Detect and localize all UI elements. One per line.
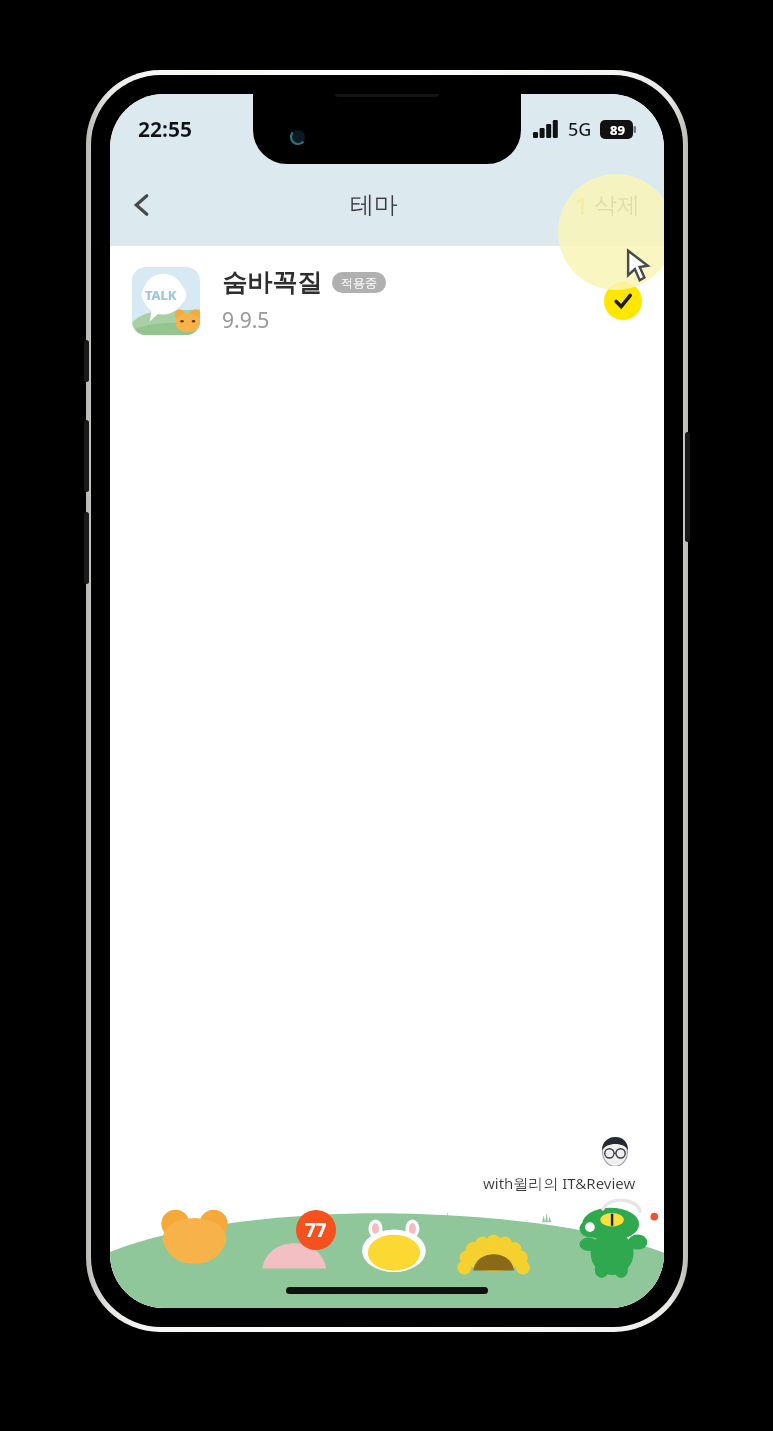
staticText: 적용중 (341, 275, 377, 290)
staticText: 삭제 (594, 191, 640, 220)
staticText: with윌리의 IT&Review (483, 1173, 636, 1193)
button[interactable]: TALK (110, 246, 664, 356)
button[interactable]: Back (110, 164, 174, 246)
staticText: 22:55 (138, 115, 192, 144)
staticText: 1 (575, 190, 589, 221)
staticText: 숨바꼭질 (222, 267, 322, 298)
staticText: 77 (305, 1217, 327, 1243)
button[interactable]: 1 (575, 190, 640, 221)
staticText: 테마 (350, 190, 398, 220)
staticText: 9.9.5 (222, 306, 270, 335)
button[interactable]: Selected (604, 282, 642, 320)
staticText: TALK (145, 286, 177, 304)
staticText: 89 (610, 121, 625, 139)
staticText: 5G (568, 117, 592, 142)
